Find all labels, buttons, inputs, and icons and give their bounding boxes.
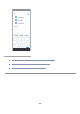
button[interactable]: [9, 64, 50, 65]
button[interactable]: [15, 19, 23, 21]
button[interactable]: [9, 60, 55, 61]
button[interactable]: [15, 22, 24, 24]
button[interactable]: [15, 16, 24, 18]
button[interactable]: [9, 68, 46, 69]
